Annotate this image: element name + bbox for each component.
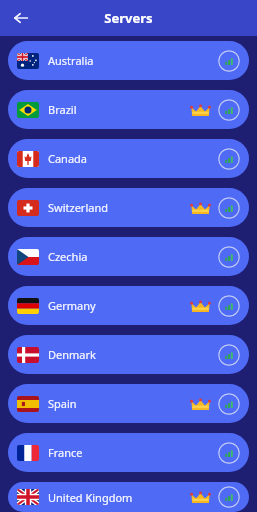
button[interactable]: Signal strength — [218, 486, 240, 508]
button[interactable]: Signal strength — [218, 148, 240, 170]
button[interactable]: France — [8, 433, 249, 472]
staticText: Canada — [48, 151, 88, 166]
button[interactable]: Switzerland — [8, 188, 249, 227]
button[interactable]: Germany — [8, 286, 249, 325]
staticText: Switzerland — [48, 200, 108, 215]
button[interactable]: Signal strength — [218, 295, 240, 317]
other: Premium — [191, 299, 210, 313]
staticText: Germany — [48, 298, 96, 313]
button[interactable]: Back — [6, 3, 36, 33]
staticText: Spain — [48, 396, 77, 411]
button[interactable]: Brazil — [8, 90, 249, 129]
staticText: Brazil — [48, 102, 77, 117]
button[interactable]: Czechia — [8, 237, 249, 276]
staticText: Czechia — [48, 249, 88, 264]
other: Premium — [191, 201, 210, 215]
button[interactable]: Signal strength — [218, 197, 240, 219]
staticText: Denmark — [48, 347, 96, 362]
button[interactable]: Denmark — [8, 335, 249, 374]
button[interactable]: Signal strength — [218, 50, 240, 72]
staticText: France — [48, 445, 83, 460]
button[interactable]: Spain — [8, 384, 249, 423]
staticText: Servers — [104, 9, 153, 27]
staticText: United Kingdom — [48, 490, 133, 505]
other: Premium — [191, 397, 210, 411]
other: Premium — [191, 490, 210, 504]
button[interactable]: Australia — [8, 41, 249, 80]
staticText: Australia — [48, 53, 94, 68]
other: Premium — [191, 103, 210, 117]
button[interactable]: Canada — [8, 139, 249, 178]
button[interactable]: Signal strength — [218, 442, 240, 464]
button[interactable]: Signal strength — [218, 99, 240, 121]
button[interactable]: Signal strength — [218, 393, 240, 415]
button[interactable]: Signal strength — [218, 246, 240, 268]
button[interactable]: United Kingdom — [8, 482, 249, 512]
button[interactable]: Signal strength — [218, 344, 240, 366]
